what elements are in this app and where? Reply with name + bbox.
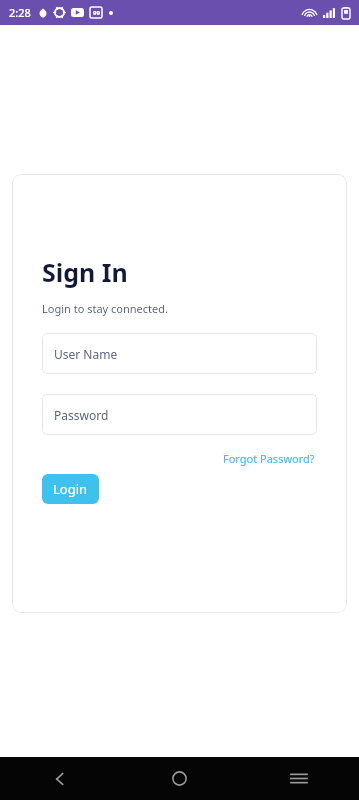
staticText: 2:28 [9, 5, 31, 20]
staticText: Sign In [42, 255, 128, 289]
button[interactable]: Login [42, 474, 99, 504]
staticText: User Name [54, 346, 118, 362]
staticText: Login [53, 480, 88, 498]
button[interactable]: Forgot Password? [221, 449, 317, 468]
button[interactable]: Home [119, 757, 239, 800]
button[interactable]: User Name [42, 333, 317, 374]
button[interactable]: Recent apps [239, 757, 359, 800]
staticText: 99 [93, 9, 100, 17]
staticText: Password [54, 407, 109, 423]
staticText: Login to stay connected. [42, 301, 168, 316]
staticText: Forgot Password? [223, 451, 315, 466]
button[interactable]: Back [0, 757, 119, 800]
button[interactable]: Password [42, 394, 317, 435]
